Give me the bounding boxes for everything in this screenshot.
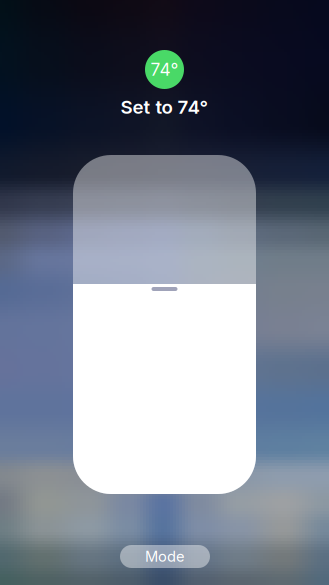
- button[interactable]: Temperature slider: [73, 155, 256, 494]
- staticText: 74°: [150, 59, 178, 80]
- button[interactable]: Mode: [120, 545, 210, 568]
- staticText: Mode: [145, 548, 185, 565]
- staticText: Set to 74°: [120, 96, 208, 118]
